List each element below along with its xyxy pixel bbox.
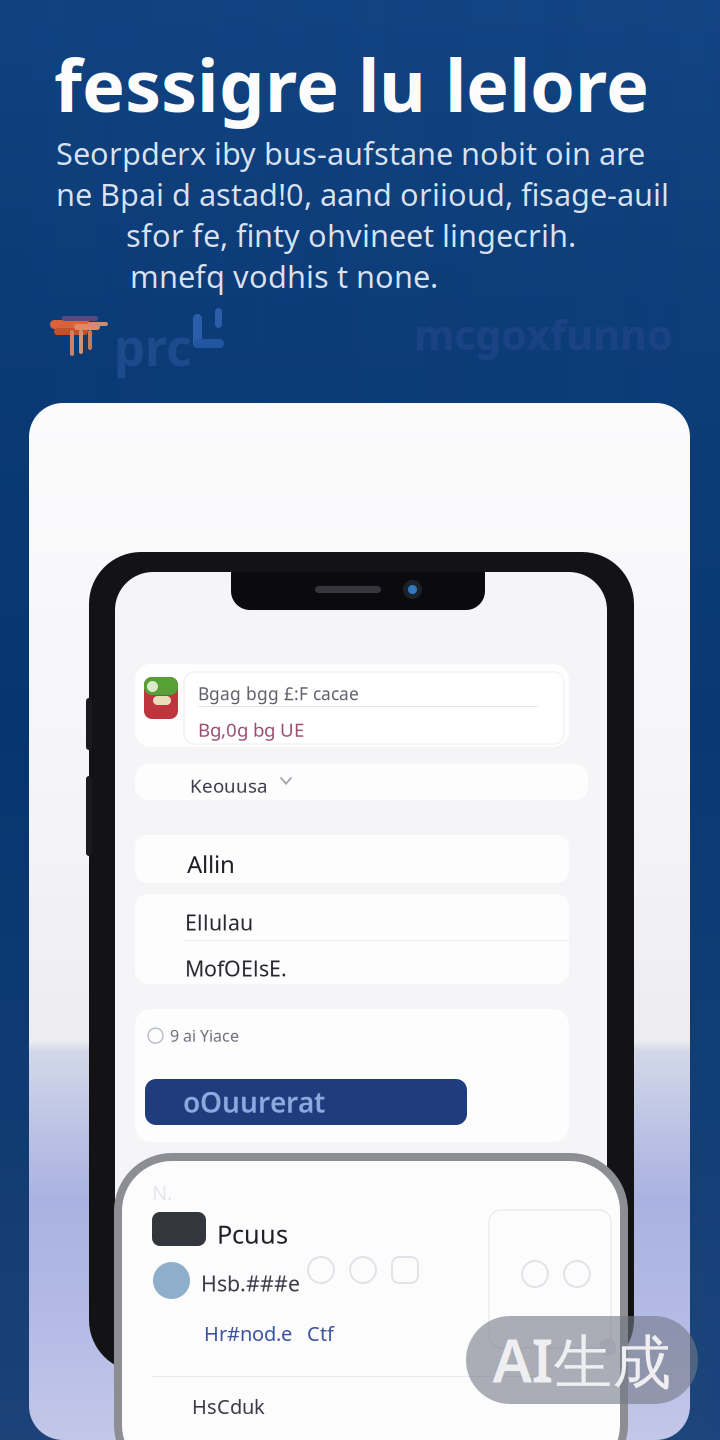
staticText: mcgoxfunno <box>414 307 673 361</box>
staticText: Keouusa <box>190 773 267 798</box>
staticText: MofOElsE. <box>185 954 287 982</box>
staticText: 9 ai Yiace <box>170 1025 239 1046</box>
staticText: Seorpderx iby bus-aufstane nobit oin are <box>56 133 645 173</box>
staticText: HsCduk <box>192 1393 265 1420</box>
button[interactable]: oOuurerat <box>145 1079 467 1125</box>
staticText: Hr#nod.e Ctf <box>204 1320 334 1347</box>
staticText: Pcuus <box>217 1217 288 1251</box>
staticText: oOuurerat <box>183 1083 325 1121</box>
staticText: ne Bpai d astad!0, aand oriioud, fisage-… <box>56 174 669 214</box>
staticText: Ellulau <box>185 908 253 936</box>
staticText: prc <box>114 314 191 379</box>
staticText: fessigre lu lelore <box>54 36 649 132</box>
staticText: Hsb.###e <box>201 1269 300 1297</box>
staticText: sfor fe, finty ohvineet lingecrih. <box>126 215 576 255</box>
staticText: N. <box>152 1179 172 1206</box>
staticText: AI生成 <box>492 1321 671 1399</box>
staticText: mnefq vodhis t none. <box>130 256 438 296</box>
staticText: Allin <box>187 848 235 880</box>
staticText: Bg,0g bg UE <box>198 717 304 742</box>
staticText: Bgag bgg £:F cacae <box>198 682 359 705</box>
